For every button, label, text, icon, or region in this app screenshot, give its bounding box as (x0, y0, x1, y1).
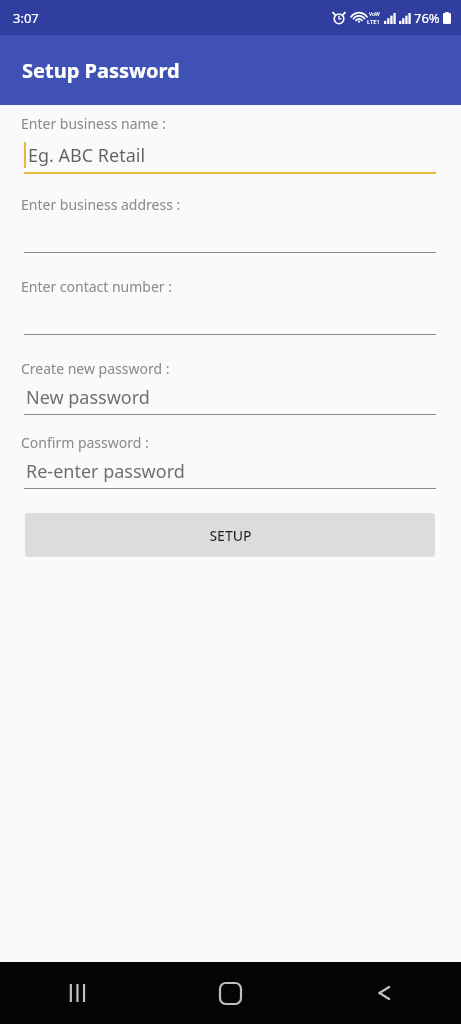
button[interactable]: Re-enter password (0, 459, 461, 489)
staticText: Confirm password : (21, 433, 149, 452)
button[interactable]: Home (153, 962, 307, 1024)
button[interactable]: Recent apps (0, 962, 153, 1024)
staticText: LTE1 (367, 18, 381, 26)
button[interactable]: New password (0, 385, 461, 415)
staticText: SETUP (209, 526, 252, 545)
button[interactable] (0, 252, 461, 253)
staticText: 76% (414, 9, 440, 27)
staticText: Setup Password (22, 57, 180, 84)
staticText: Enter business name : (21, 114, 166, 133)
staticText: VoW (369, 11, 380, 18)
staticText: 3:07 (13, 9, 39, 27)
staticText: Enter contact number : (21, 277, 173, 296)
staticText: Re-enter password (26, 459, 185, 484)
staticText: New password (26, 385, 150, 410)
staticText: Enter business address : (21, 195, 181, 214)
button[interactable] (0, 334, 461, 335)
staticText: Create new password : (21, 359, 170, 378)
staticText: Eg. ABC Retail (28, 143, 146, 168)
button[interactable]: SETUP (25, 513, 435, 557)
button[interactable]: Back (307, 962, 461, 1024)
button[interactable]: Eg. ABC Retail (0, 142, 461, 174)
